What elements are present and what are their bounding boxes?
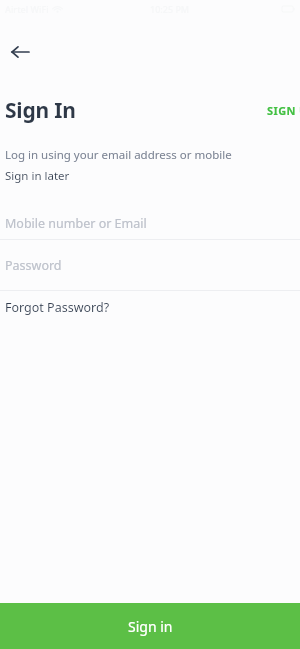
button[interactable]: Mobile number or Email xyxy=(0,208,300,239)
staticText: Sign In xyxy=(5,96,76,125)
staticText: Forgot Password? xyxy=(5,299,110,316)
staticText: Sign in xyxy=(128,617,173,636)
button[interactable]: Sign in xyxy=(0,603,300,649)
button[interactable]: Back xyxy=(2,34,38,70)
button[interactable]: Password xyxy=(0,240,300,290)
button[interactable]: SIGN UP xyxy=(267,103,300,118)
staticText: Password xyxy=(5,257,62,274)
button[interactable]: Forgot Password? xyxy=(0,291,300,323)
staticText: Mobile number or Email xyxy=(5,215,147,232)
staticText: SIGN UP xyxy=(267,103,300,118)
button[interactable]: Sign in later xyxy=(0,168,70,184)
staticText: Log in using your email address or mobil… xyxy=(5,147,232,163)
